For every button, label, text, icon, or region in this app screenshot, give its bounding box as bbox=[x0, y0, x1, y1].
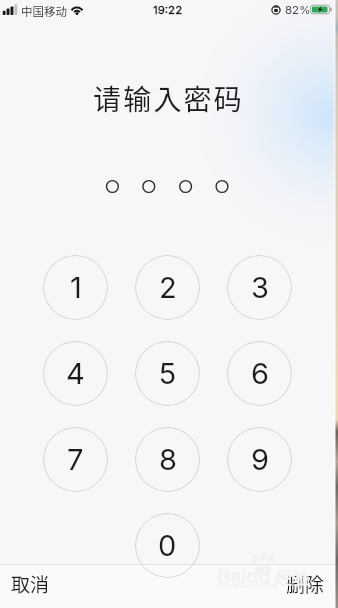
staticText: 19:22 bbox=[153, 3, 183, 17]
staticText: 9 bbox=[251, 442, 269, 477]
staticText: 8 bbox=[159, 442, 177, 477]
staticText: jingyan.baidu.com bbox=[217, 581, 278, 589]
staticText: 取消 bbox=[11, 570, 50, 596]
button[interactable]: 7 bbox=[43, 427, 108, 492]
button[interactable]: 3 bbox=[227, 255, 292, 320]
button[interactable]: 9 bbox=[227, 427, 292, 492]
staticText: 中国移动 bbox=[21, 3, 67, 20]
staticText: 请输入密码 bbox=[93, 78, 245, 119]
button[interactable]: 2 bbox=[135, 255, 200, 320]
button[interactable]: 4 bbox=[43, 341, 108, 406]
staticText: 删除 bbox=[286, 570, 325, 596]
staticText: 2 bbox=[159, 270, 177, 305]
button[interactable]: 5 bbox=[135, 341, 200, 406]
staticText: 4 bbox=[66, 356, 85, 391]
staticText: 5 bbox=[159, 356, 177, 391]
staticText: 7 bbox=[67, 442, 84, 477]
button[interactable]: 删除 bbox=[272, 564, 338, 608]
button[interactable]: 1 bbox=[43, 255, 108, 320]
staticText: 6 bbox=[251, 356, 269, 391]
staticText: 82% bbox=[285, 3, 311, 17]
staticText: 1 bbox=[70, 270, 82, 305]
button[interactable]: 8 bbox=[135, 427, 200, 492]
staticText: Baidu bbox=[217, 564, 271, 588]
button[interactable]: 取消 bbox=[0, 564, 64, 608]
button[interactable]: 6 bbox=[227, 341, 292, 406]
staticText: 3 bbox=[251, 270, 269, 305]
staticText: 0 bbox=[158, 528, 177, 563]
button[interactable]: 0 bbox=[135, 513, 200, 578]
staticText: 经验 bbox=[275, 564, 309, 589]
